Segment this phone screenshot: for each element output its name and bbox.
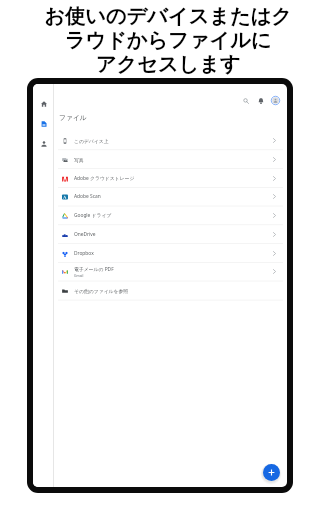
staticText: その他のファイルを参照 [74, 288, 129, 294]
button[interactable]: OneDrive [54, 225, 287, 244]
button[interactable]: その他のファイルを参照 [54, 281, 287, 300]
button[interactable]: 電子メールの PDF [54, 262, 287, 281]
staticText: Adobe Scan [74, 193, 101, 200]
staticText: このデバイス上 [74, 138, 109, 144]
staticText: OneDrive [74, 231, 96, 238]
button[interactable]: Shared [39, 139, 48, 148]
staticText: Dropbox [74, 250, 94, 257]
button[interactable]: Adobe クラウドストレージ [54, 169, 287, 188]
button[interactable]: Files [39, 119, 48, 128]
button[interactable]: Dropbox [54, 244, 287, 263]
staticText: お使いのデバイスまたはク ラウドからファイルに アクセスします [44, 4, 292, 77]
staticText: 写真 [74, 157, 84, 163]
button[interactable]: Search [241, 96, 250, 105]
button[interactable]: Home [39, 99, 48, 108]
button[interactable]: Notifications [256, 96, 265, 105]
staticText: 電子メールの PDF [74, 266, 114, 273]
staticText: Adobe クラウドストレージ [74, 175, 135, 182]
staticText: Google ドライブ [74, 212, 112, 219]
button[interactable]: このデバイス上 [54, 131, 287, 150]
button[interactable]: Adobe Scan [54, 187, 287, 206]
button[interactable]: 写真 [54, 150, 287, 169]
button[interactable]: Account [271, 96, 280, 105]
button[interactable]: Add [263, 464, 280, 481]
staticText: ファイル [59, 113, 87, 122]
staticText: Gmail [74, 273, 84, 278]
button[interactable]: Google ドライブ [54, 206, 287, 225]
